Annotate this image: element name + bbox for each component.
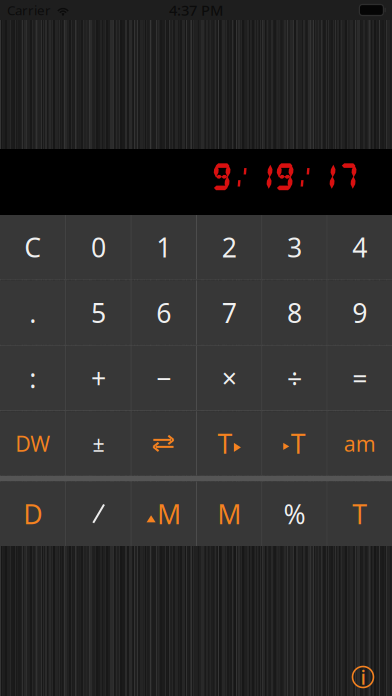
- staticText: ÷: [287, 360, 302, 396]
- staticText: 5: [91, 295, 106, 330]
- staticText: 9: [352, 295, 367, 330]
- button[interactable]: +: [66, 346, 131, 410]
- button[interactable]: ×: [197, 346, 261, 410]
- button[interactable]: T: [197, 411, 261, 476]
- button[interactable]: ±: [66, 411, 131, 476]
- button[interactable]: [66, 482, 131, 546]
- button[interactable]: 9: [328, 280, 392, 345]
- button[interactable]: [132, 411, 196, 476]
- button[interactable]: 1: [132, 215, 196, 279]
- button[interactable]: 8: [262, 280, 327, 345]
- staticText: C: [24, 229, 41, 265]
- button[interactable]: 4: [328, 215, 392, 279]
- staticText: T: [217, 426, 232, 461]
- staticText: ±: [92, 429, 104, 457]
- staticText: i: [360, 664, 365, 690]
- button[interactable]: 6: [132, 280, 196, 345]
- staticText: ×: [222, 360, 237, 396]
- staticText: 0: [91, 229, 106, 265]
- staticText: %: [283, 496, 305, 531]
- staticText: 8: [287, 295, 302, 330]
- button[interactable]: ÷: [262, 346, 327, 410]
- staticText: +: [91, 360, 106, 396]
- staticText: 4: [352, 229, 367, 265]
- staticText: .: [29, 295, 36, 330]
- staticText: 2: [222, 229, 237, 265]
- staticText: M: [157, 496, 181, 531]
- button[interactable]: DW: [0, 411, 65, 476]
- button[interactable]: T: [328, 482, 392, 546]
- staticText: 1: [156, 229, 171, 265]
- button[interactable]: T: [262, 411, 327, 476]
- button[interactable]: C: [0, 215, 65, 279]
- button[interactable]: −: [132, 346, 196, 410]
- staticText: DW: [15, 429, 50, 457]
- button[interactable]: .: [0, 280, 65, 345]
- button[interactable]: Info: [341, 655, 385, 696]
- button[interactable]: am: [328, 411, 392, 476]
- staticText: 6: [156, 295, 171, 330]
- staticText: T: [352, 496, 367, 531]
- button[interactable]: 0: [66, 215, 131, 279]
- staticText: Carrier: [7, 1, 51, 19]
- button[interactable]: 3: [262, 215, 327, 279]
- staticText: 3: [287, 229, 302, 265]
- button[interactable]: %: [262, 482, 327, 546]
- staticText: =: [352, 360, 367, 396]
- button[interactable]: 7: [197, 280, 261, 345]
- staticText: 4:37 PM: [169, 0, 223, 20]
- staticText: T: [291, 426, 306, 461]
- staticText: am: [344, 429, 376, 457]
- button[interactable]: 2: [197, 215, 261, 279]
- staticText: :: [29, 360, 36, 396]
- button[interactable]: =: [328, 346, 392, 410]
- button[interactable]: M: [132, 482, 196, 546]
- button[interactable]: M: [197, 482, 261, 546]
- button[interactable]: 5: [66, 280, 131, 345]
- staticText: 7: [222, 295, 237, 330]
- staticText: −: [156, 360, 171, 396]
- staticText: D: [23, 496, 42, 531]
- button[interactable]: :: [0, 346, 65, 410]
- staticText: M: [217, 496, 241, 531]
- button[interactable]: D: [0, 482, 65, 546]
